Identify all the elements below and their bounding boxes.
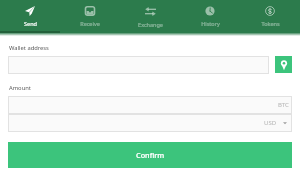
button[interactable]: Receive — [60, 0, 120, 33]
staticText: BTC — [278, 101, 289, 109]
staticText: Receive — [80, 20, 100, 27]
staticText: Tokens — [261, 20, 280, 27]
button[interactable]: USD — [8, 114, 292, 132]
button[interactable]: Choose address from map — [275, 56, 292, 73]
staticText: History — [201, 20, 220, 27]
staticText: Amount — [9, 84, 31, 92]
button[interactable]: Confirm — [8, 142, 292, 168]
staticText: USD — [264, 119, 277, 127]
button[interactable]: Exchange — [120, 0, 180, 33]
staticText: Send — [24, 20, 37, 27]
button[interactable]: Send — [0, 0, 60, 33]
button[interactable]: Tokens — [240, 0, 300, 33]
staticText: Wallet address — [9, 44, 49, 52]
button[interactable] — [8, 56, 269, 74]
staticText: Confirm — [136, 150, 165, 160]
button[interactable]: History — [180, 0, 240, 33]
button[interactable]: BTC — [8, 96, 292, 114]
staticText: Exchange — [138, 21, 163, 28]
